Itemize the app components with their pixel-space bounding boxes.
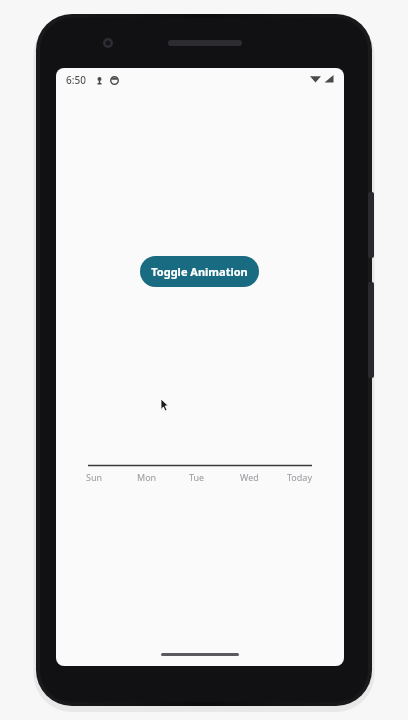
staticText: Wed [240, 471, 259, 483]
staticText: 6:50 [66, 73, 86, 87]
staticText: Mon [137, 471, 157, 483]
staticText: Today [287, 471, 312, 483]
staticText: Toggle Animation [151, 264, 248, 279]
button[interactable]: Toggle Animation [140, 256, 259, 287]
other: Home gesture bar [161, 653, 239, 656]
staticText: Tue [189, 471, 205, 483]
staticText: Sun [86, 471, 103, 483]
